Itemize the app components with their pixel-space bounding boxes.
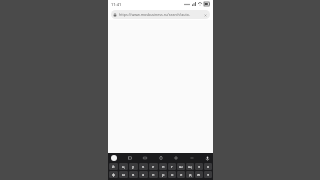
button[interactable]: л [177, 171, 185, 178]
button[interactable]: Site information [111, 10, 210, 19]
button[interactable]: Themes [127, 155, 133, 161]
staticText: р [162, 172, 165, 177]
button[interactable]: в [129, 171, 138, 178]
staticText: д [189, 172, 192, 177]
button[interactable]: п [149, 171, 158, 178]
staticText: ш [179, 164, 183, 169]
button[interactable]: к [139, 163, 148, 170]
staticText: щ [188, 164, 192, 169]
button[interactable]: GIF [142, 155, 148, 161]
staticText: х [207, 164, 210, 169]
button[interactable]: Clipboard [158, 155, 164, 161]
button[interactable]: е [149, 163, 158, 170]
staticText: з [198, 164, 200, 169]
button[interactable]: Settings [173, 155, 179, 161]
staticText: у [132, 164, 135, 169]
staticText: л [180, 172, 183, 177]
button[interactable]: р [159, 171, 167, 178]
staticText: о [171, 172, 174, 177]
staticText: а [142, 172, 145, 177]
staticText: в [132, 172, 135, 177]
staticText: п [152, 172, 155, 177]
button[interactable]: ц [119, 163, 128, 170]
button[interactable]: й [109, 163, 118, 170]
button[interactable]: ф [109, 171, 118, 178]
staticText: https://www.mosbusiness.ru/search/auto-n… [119, 12, 201, 17]
button[interactable]: щ [186, 163, 194, 170]
button[interactable]: Clear [202, 12, 208, 18]
button[interactable]: More options [189, 155, 195, 161]
button[interactable]: э [204, 171, 212, 178]
button[interactable]: ы [119, 171, 128, 178]
button[interactable]: ш [177, 163, 185, 170]
staticText: г [171, 164, 173, 169]
button[interactable]: Voice input [204, 155, 210, 161]
other: Site information [113, 13, 117, 17]
staticText: ц [122, 164, 125, 169]
button[interactable]: х [204, 163, 212, 170]
button[interactable]: г [168, 163, 176, 170]
staticText: ы [122, 172, 126, 177]
staticText: ж [197, 172, 201, 177]
staticText: е [152, 164, 155, 169]
button[interactable]: з [195, 163, 203, 170]
button[interactable]: ж [195, 171, 203, 178]
button[interactable]: а [139, 171, 148, 178]
button[interactable]: о [168, 171, 176, 178]
button[interactable]: д [186, 171, 194, 178]
staticText: э [207, 172, 209, 177]
staticText: н [162, 164, 165, 169]
staticText: ф [112, 172, 115, 177]
button[interactable]: н [159, 163, 167, 170]
staticText: й [112, 164, 115, 169]
button[interactable]: Google [111, 155, 117, 161]
staticText: к [142, 164, 145, 169]
staticText: 11:41 [111, 2, 122, 7]
button[interactable]: у [129, 163, 138, 170]
